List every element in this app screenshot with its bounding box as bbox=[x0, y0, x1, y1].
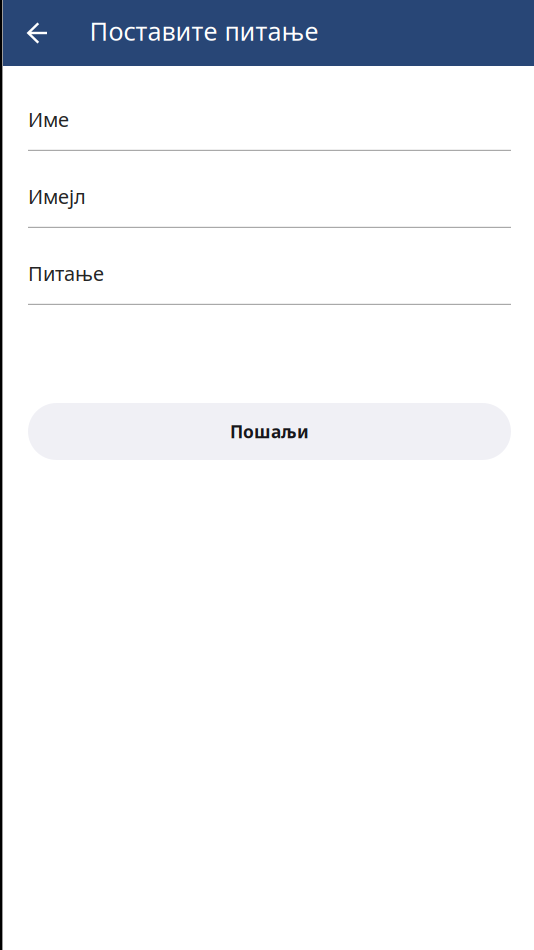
staticText: Питање bbox=[28, 260, 104, 287]
button[interactable]: Питање bbox=[28, 250, 511, 305]
staticText: Пошаљи bbox=[230, 420, 309, 443]
button[interactable]: Имејл bbox=[28, 173, 511, 228]
staticText: Поставите питање bbox=[90, 14, 319, 48]
button[interactable]: Име bbox=[28, 96, 511, 151]
button[interactable]: Back bbox=[0, 0, 60, 66]
staticText: Имејл bbox=[28, 183, 86, 210]
button[interactable]: Пошаљи bbox=[28, 403, 511, 460]
staticText: Име bbox=[28, 106, 69, 133]
